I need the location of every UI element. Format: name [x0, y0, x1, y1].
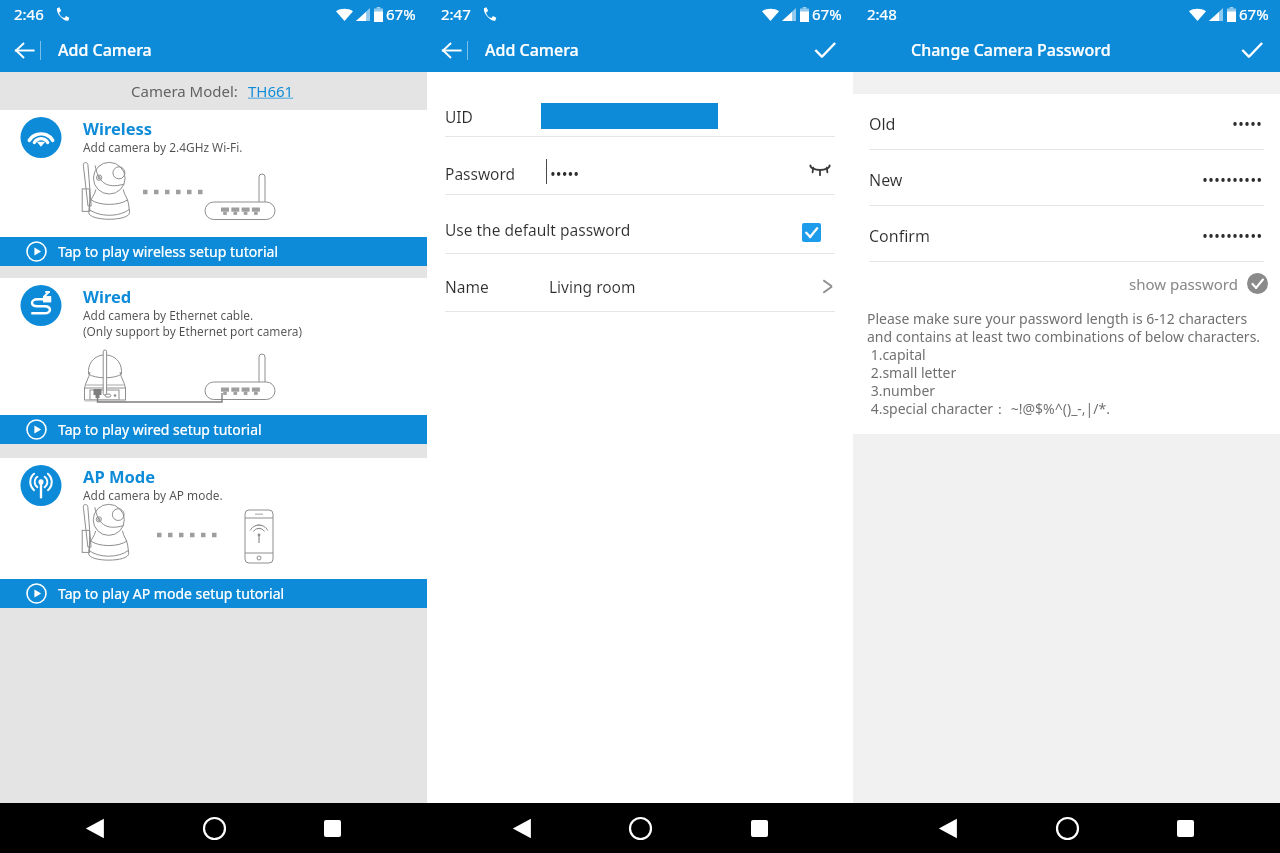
- button[interactable]: Back: [71, 804, 119, 852]
- staticText: Add Camera: [485, 39, 579, 61]
- button[interactable]: Tap to play wired setup tutorial: [0, 415, 427, 444]
- button[interactable]: Back: [6, 32, 42, 68]
- button[interactable]: Name: [427, 254, 853, 311]
- button[interactable]: Confirm: [1234, 32, 1270, 68]
- button[interactable]: Recents: [308, 804, 356, 852]
- button[interactable]: Password: [427, 137, 853, 194]
- button[interactable]: Confirm: [853, 206, 1280, 261]
- button[interactable]: AP Mode: [0, 458, 427, 579]
- button[interactable]: Wireless: [0, 110, 427, 237]
- staticText: Old: [869, 113, 896, 135]
- button[interactable]: Use the default password: [427, 195, 853, 253]
- staticText: ••••••••••: [1202, 225, 1263, 247]
- staticText: Name: [445, 276, 489, 297]
- staticText: AP Mode: [83, 465, 156, 487]
- staticText: 2:48: [867, 4, 897, 24]
- staticText: Confirm: [869, 225, 930, 247]
- staticText: Add camera by Ethernet cable. (Only supp…: [83, 307, 303, 339]
- staticText: Living room: [549, 276, 636, 297]
- staticText: New: [869, 169, 903, 191]
- button[interactable]: UID: [427, 93, 853, 136]
- button[interactable]: Home: [616, 804, 664, 852]
- button[interactable]: Confirm: [807, 32, 843, 68]
- staticText: Use the default password: [445, 219, 631, 240]
- button[interactable]: Wired: [0, 278, 427, 415]
- staticText: 2:46: [14, 4, 44, 24]
- button[interactable]: New: [853, 150, 1280, 205]
- button[interactable]: Back: [924, 804, 972, 852]
- button[interactable]: Home: [1043, 804, 1091, 852]
- staticText: Add Camera: [58, 39, 152, 61]
- staticText: Add camera by 2.4GHz Wi-Fi.: [83, 139, 243, 155]
- button[interactable]: Back: [498, 804, 546, 852]
- button[interactable]: Tap to play AP mode setup tutorial: [0, 579, 427, 608]
- staticText: Wireless: [83, 117, 153, 139]
- staticText: Wired: [83, 285, 132, 307]
- button[interactable]: Back: [433, 32, 469, 68]
- button[interactable]: show password: [1129, 273, 1268, 294]
- button[interactable]: Recents: [1161, 804, 1209, 852]
- button[interactable]: Show password: [805, 155, 835, 185]
- staticText: TH661: [248, 81, 294, 101]
- staticText: Camera Model:: [131, 81, 238, 101]
- staticText: UID: [445, 106, 473, 127]
- staticText: Tap to play AP mode setup tutorial: [58, 584, 285, 603]
- staticText: 67%: [812, 4, 842, 24]
- staticText: Add camera by AP mode.: [83, 487, 223, 503]
- staticText: Password: [445, 163, 516, 184]
- staticText: Tap to play wired setup tutorial: [58, 420, 262, 439]
- button[interactable]: Recents: [735, 804, 783, 852]
- staticText: •••••: [550, 163, 580, 184]
- staticText: Change Camera Password: [911, 39, 1111, 61]
- staticText: 67%: [386, 4, 416, 24]
- staticText: Please make sure your password length is…: [867, 309, 1261, 418]
- staticText: show password: [1129, 274, 1238, 294]
- button[interactable]: Tap to play wireless setup tutorial: [0, 237, 427, 266]
- staticText: Tap to play wireless setup tutorial: [58, 242, 279, 261]
- button[interactable]: Old: [853, 94, 1280, 149]
- staticText: ••••••••••: [1202, 169, 1263, 191]
- staticText: •••••: [1232, 113, 1263, 135]
- staticText: 67%: [1239, 4, 1269, 24]
- button[interactable]: Home: [190, 804, 238, 852]
- staticText: 2:47: [441, 4, 471, 24]
- button[interactable]: TH661: [246, 75, 296, 107]
